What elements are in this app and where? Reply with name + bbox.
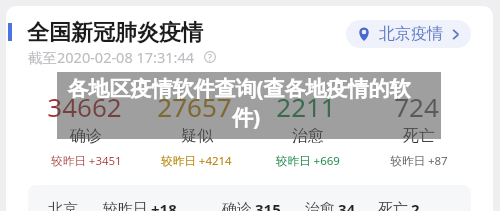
staticText: 截至2020-02-08 17:31:44: [28, 47, 194, 67]
staticText: 北京: [48, 200, 78, 211]
button[interactable]: 北京疫情: [346, 20, 471, 48]
staticText: 315: [255, 199, 281, 211]
button[interactable]: 北京: [28, 185, 471, 211]
staticText: 治愈: [292, 126, 324, 146]
staticText: 724: [394, 89, 439, 124]
staticText: 2211: [276, 89, 336, 124]
staticText: 34662: [47, 89, 122, 124]
staticText: 件): [54, 103, 438, 132]
staticText: 较昨日 +3451: [51, 153, 122, 169]
staticText: 较昨日 +669: [276, 153, 340, 169]
staticText: 较昨日: [103, 200, 148, 211]
staticText: 确诊: [222, 200, 252, 211]
staticText: 27657: [157, 89, 232, 124]
staticText: ?: [208, 51, 212, 63]
staticText: 死亡: [378, 200, 408, 211]
staticText: 确诊: [70, 126, 102, 146]
staticText: 治愈: [305, 200, 335, 211]
staticText: 北京疫情: [379, 24, 443, 44]
staticText: 全国新冠肺炎疫情: [27, 19, 203, 47]
staticText: 2: [411, 199, 420, 211]
staticText: 疑似: [181, 126, 213, 146]
button[interactable]: 说明: [204, 51, 216, 63]
staticText: +18: [151, 199, 177, 211]
staticText: 较昨日 +87: [390, 153, 448, 169]
staticText: 较昨日 +4214: [161, 153, 232, 169]
staticText: 34: [338, 199, 356, 211]
staticText: 各地区疫情软件查询(查各地疫情的软: [47, 74, 431, 103]
staticText: 死亡: [403, 126, 435, 146]
